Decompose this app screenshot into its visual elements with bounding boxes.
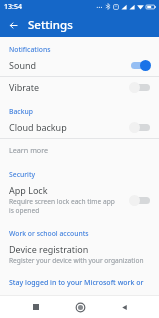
button[interactable]: Off [129,194,151,206]
button[interactable]: App Lock [0,180,159,220]
staticText: Sound [9,59,37,71]
staticText: Register your device with your organizat… [9,256,144,265]
button[interactable]: Learn more [0,139,159,161]
staticText: Backup [9,107,33,116]
button[interactable]: Back [6,18,20,32]
button[interactable]: Cloud backup [0,117,159,138]
staticText: Security [9,170,36,179]
button[interactable]: Vibrate [0,77,159,98]
button[interactable]: Stay logged in to your Microsoft work or… [0,270,159,295]
button[interactable]: Back [115,298,133,316]
staticText: Work or school accounts [9,229,89,238]
staticText: Learn more [9,145,49,155]
staticText: Device registration [9,243,89,255]
button[interactable]: On [129,59,151,71]
button[interactable]: Sound [0,55,159,76]
button[interactable]: Recents [27,298,45,316]
button[interactable]: Off [129,121,151,133]
staticText: Cloud backup [9,121,67,133]
button[interactable]: Device registration [0,239,159,270]
staticText: Settings [28,17,73,33]
staticText: Vibrate [9,81,40,93]
button[interactable]: Home [71,298,89,316]
staticText: Require screen lock each time app is ope… [9,197,116,215]
staticText: Notifications [9,45,51,54]
staticText: App Lock [9,184,48,196]
button[interactable]: Off [129,81,151,93]
staticText: Stay logged in to your Microsoft work or… [9,278,150,289]
staticText: 13:54 [4,2,22,12]
